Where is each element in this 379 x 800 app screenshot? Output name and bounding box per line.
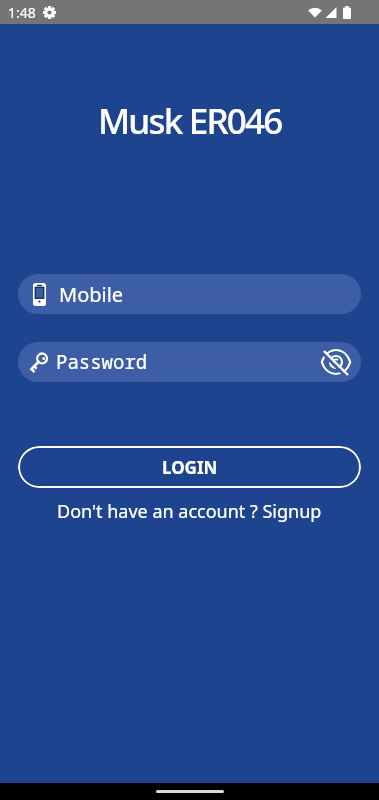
- staticText: Mobile: [59, 281, 124, 308]
- staticText: 1:48: [8, 3, 36, 22]
- button[interactable]: LOGIN: [18, 446, 361, 488]
- button[interactable]: Mobile: [18, 274, 361, 314]
- staticText: Password: [56, 349, 148, 375]
- button[interactable]: [321, 348, 351, 376]
- staticText: LOGIN: [162, 456, 218, 479]
- staticText: Musk ER046: [98, 97, 282, 145]
- button[interactable]: Password: [18, 342, 361, 382]
- button[interactable]: Don't have an account ? Signup: [57, 499, 322, 524]
